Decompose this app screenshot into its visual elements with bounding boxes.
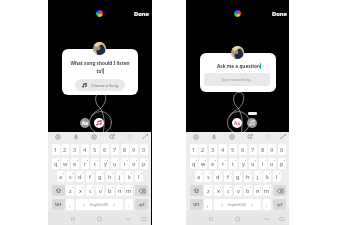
button[interactable]: d <box>76 171 84 182</box>
button[interactable]: v <box>96 185 104 196</box>
button[interactable]: t <box>91 158 99 169</box>
button[interactable]: n <box>254 185 262 196</box>
button[interactable]: p <box>140 158 148 169</box>
button[interactable]: 1 <box>52 144 60 155</box>
button[interactable]: l <box>273 171 281 182</box>
button[interactable]: 2 <box>199 144 207 155</box>
button[interactable]: Colour picker <box>234 10 241 17</box>
button[interactable]: Music mode <box>247 118 257 128</box>
button[interactable]: 5 <box>91 144 99 155</box>
button[interactable]: f <box>86 171 94 182</box>
button[interactable]: l <box>135 171 143 182</box>
button[interactable]: . <box>125 199 133 210</box>
button[interactable]: 4 <box>81 144 89 155</box>
button[interactable]: Ask me a question <box>200 53 276 92</box>
button[interactable]: shift <box>52 185 65 196</box>
button[interactable]: o <box>130 158 138 169</box>
button[interactable]: r <box>81 158 89 169</box>
button[interactable]: shift <box>190 185 203 196</box>
button[interactable]: Text mode <box>80 118 90 128</box>
button[interactable]: 9 <box>268 144 276 155</box>
button[interactable]: a <box>57 171 65 182</box>
button[interactable]: Done <box>269 8 289 20</box>
button[interactable]: s <box>204 171 212 182</box>
button[interactable]: , <box>204 199 212 210</box>
button[interactable]: , <box>66 199 74 210</box>
button[interactable]: p <box>278 158 286 169</box>
button[interactable]: 5 <box>229 144 237 155</box>
button[interactable]: b <box>244 185 252 196</box>
button[interactable]: h <box>244 171 252 182</box>
button[interactable]: t <box>229 158 237 169</box>
button[interactable]: v <box>234 185 242 196</box>
button[interactable]: . <box>263 199 271 210</box>
button[interactable]: r <box>219 158 227 169</box>
button[interactable]: Text mode <box>232 118 242 128</box>
button[interactable]: 3 <box>71 144 79 155</box>
button[interactable]: z <box>66 185 74 196</box>
button[interactable]: y <box>101 158 109 169</box>
button[interactable]: Choose a Song <box>75 79 125 91</box>
button[interactable]: 7 <box>249 144 257 155</box>
button[interactable]: sym <box>190 199 203 210</box>
button[interactable]: u <box>249 158 257 169</box>
button[interactable]: k <box>125 171 133 182</box>
button[interactable]: 8 <box>259 144 267 155</box>
button[interactable]: q <box>52 158 60 169</box>
button[interactable]: y <box>239 158 247 169</box>
button[interactable]: a <box>195 171 203 182</box>
button[interactable]: Profile photo <box>231 46 244 59</box>
button[interactable]: 1 <box>190 144 198 155</box>
button[interactable]: x <box>214 185 222 196</box>
button[interactable]: u <box>111 158 119 169</box>
button[interactable]: h <box>106 171 114 182</box>
button[interactable]: g <box>234 171 242 182</box>
button[interactable]: m <box>263 185 271 196</box>
button[interactable]: z <box>204 185 212 196</box>
button[interactable]: 2 <box>61 144 69 155</box>
button[interactable]: c <box>224 185 232 196</box>
button[interactable]: i <box>259 158 267 169</box>
button[interactable]: k <box>263 171 271 182</box>
button[interactable]: w <box>61 158 69 169</box>
button[interactable]: n <box>116 185 124 196</box>
button[interactable]: 4 <box>219 144 227 155</box>
button[interactable]: sym <box>52 199 65 210</box>
button[interactable]: e <box>209 158 217 169</box>
button[interactable]: What song should I listen to? <box>62 49 138 95</box>
button[interactable]: o <box>268 158 276 169</box>
button[interactable]: c <box>86 185 94 196</box>
button[interactable]: Done <box>131 8 151 20</box>
button[interactable]: 9 <box>130 144 138 155</box>
button[interactable]: 6 <box>239 144 247 155</box>
button[interactable]: Type something... <box>204 73 270 86</box>
button[interactable]: d <box>214 171 222 182</box>
button[interactable]: 6 <box>101 144 109 155</box>
button[interactable]: m <box>125 185 133 196</box>
button[interactable]: j <box>116 171 124 182</box>
button[interactable]: s <box>66 171 74 182</box>
button[interactable]: i <box>121 158 129 169</box>
button[interactable]: j <box>254 171 262 182</box>
button[interactable]: enter <box>135 199 148 210</box>
button[interactable]: enter <box>273 199 286 210</box>
button[interactable]: space <box>76 199 123 210</box>
button[interactable]: Profile photo <box>93 42 106 55</box>
button[interactable]: 0 <box>140 144 148 155</box>
button[interactable]: back <box>135 185 148 196</box>
button[interactable]: 3 <box>209 144 217 155</box>
button[interactable]: back <box>273 185 286 196</box>
button[interactable]: space <box>214 199 261 210</box>
button[interactable]: b <box>106 185 114 196</box>
button[interactable]: 0 <box>278 144 286 155</box>
button[interactable]: Music mode <box>94 118 104 128</box>
button[interactable]: Colour picker <box>96 10 103 17</box>
button[interactable]: e <box>71 158 79 169</box>
button[interactable]: q <box>190 158 198 169</box>
button[interactable]: 8 <box>121 144 129 155</box>
button[interactable]: w <box>199 158 207 169</box>
button[interactable]: 7 <box>111 144 119 155</box>
button[interactable]: g <box>96 171 104 182</box>
button[interactable]: f <box>224 171 232 182</box>
button[interactable]: x <box>76 185 84 196</box>
